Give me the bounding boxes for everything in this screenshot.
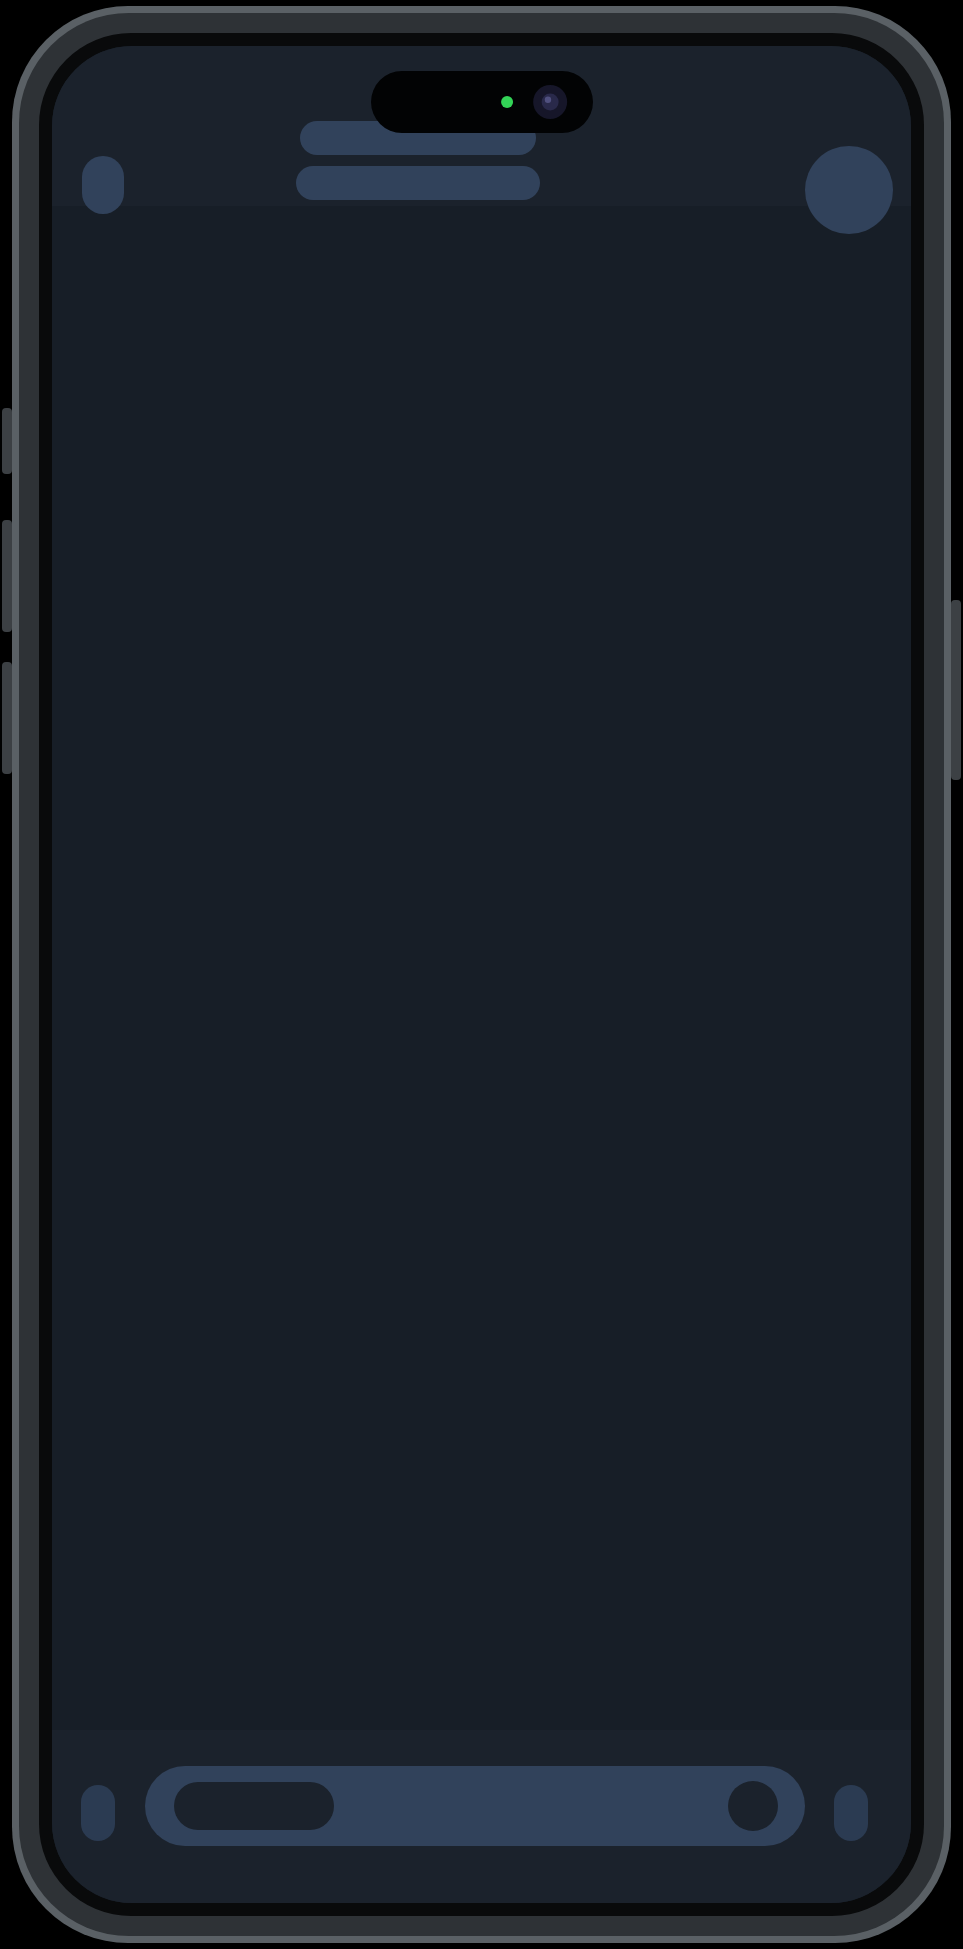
button[interactable]: Tab bbox=[834, 1785, 868, 1841]
button[interactable]: Navigation menu bbox=[82, 156, 124, 214]
button[interactable]: Account bbox=[805, 146, 893, 234]
button[interactable]: Tab bbox=[81, 1785, 115, 1841]
button[interactable]: Search bbox=[145, 1766, 805, 1846]
